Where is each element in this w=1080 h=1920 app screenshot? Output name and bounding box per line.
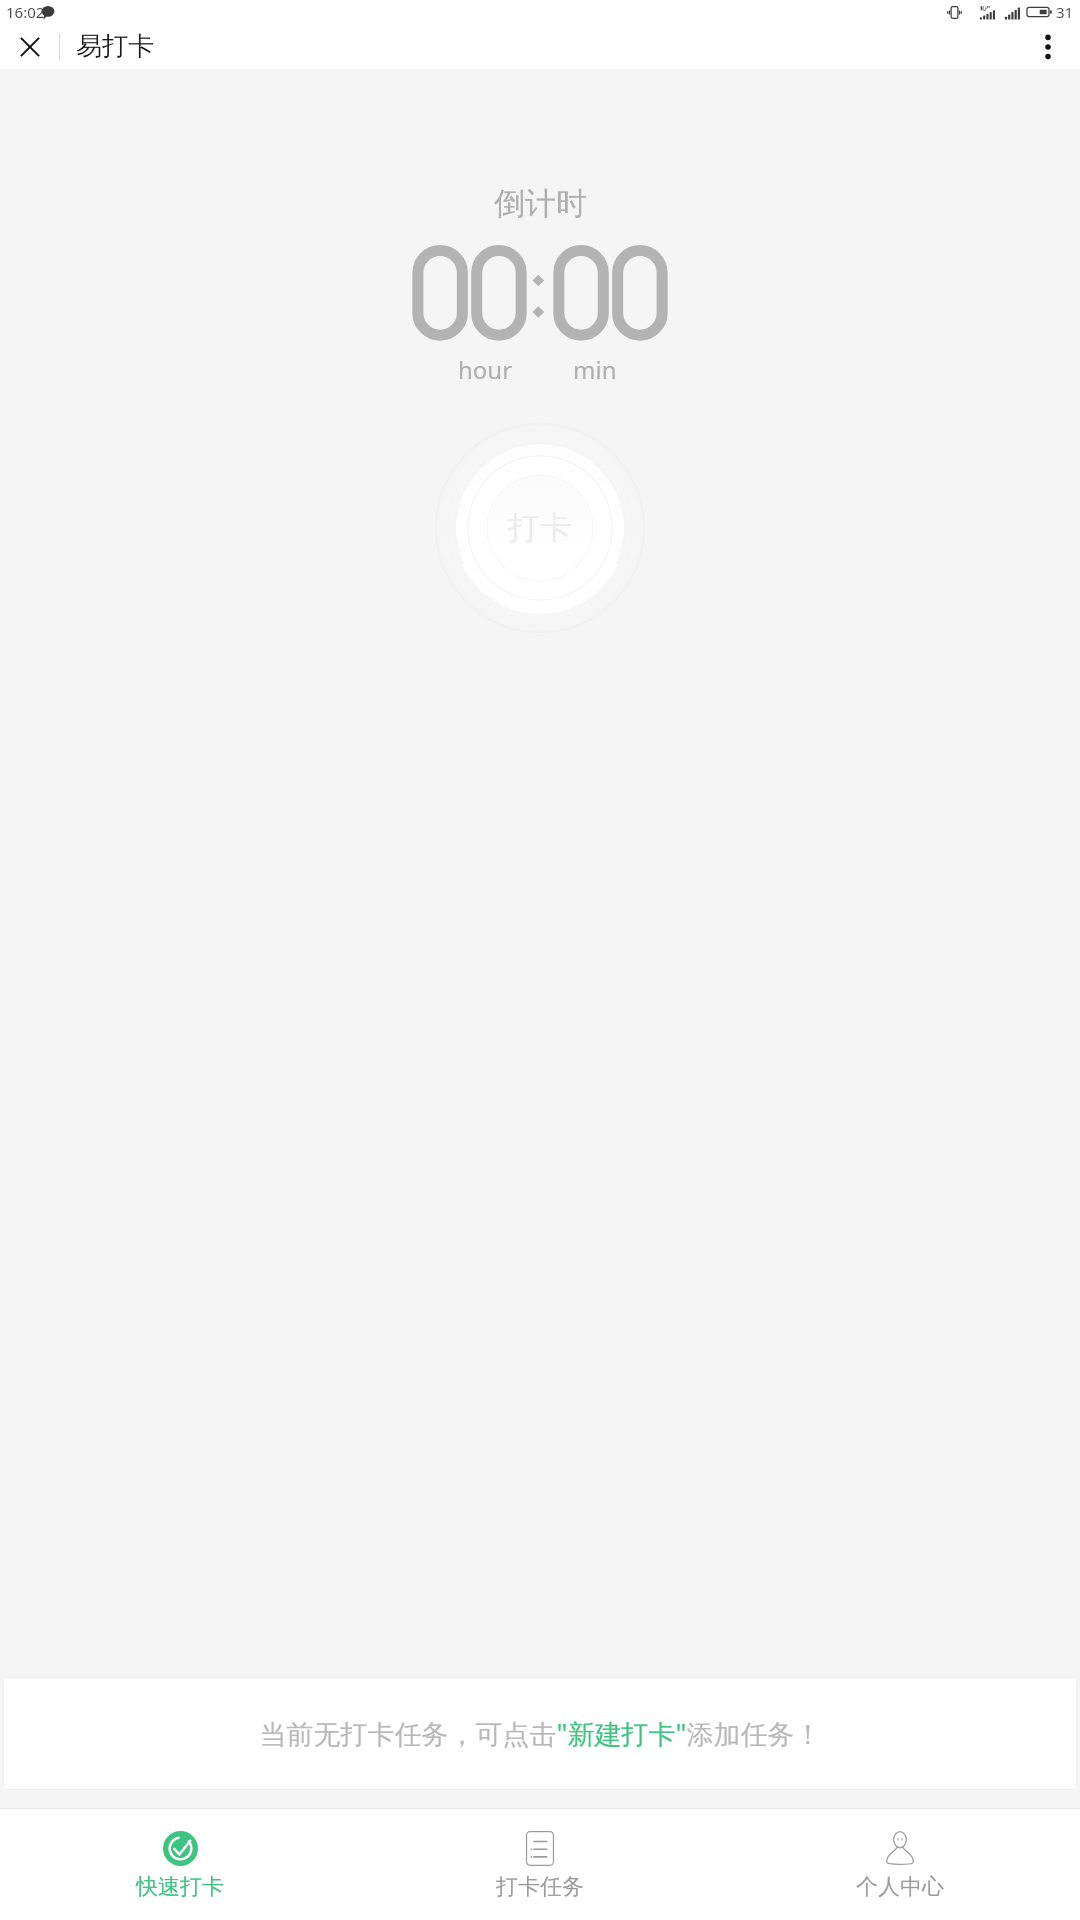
staticText: hour (458, 353, 513, 386)
staticText: 31 (1056, 2, 1074, 22)
staticText: 易打卡 (76, 30, 154, 63)
staticText: 倒计时 (494, 184, 587, 223)
button[interactable]: 打卡任务 (360, 1809, 720, 1920)
staticText: 打卡任务 (496, 1873, 584, 1901)
staticText: 快速打卡 (136, 1873, 224, 1901)
staticText: min (573, 353, 617, 386)
button[interactable]: 个人中心 (720, 1809, 1080, 1920)
staticText: 个人中心 (856, 1873, 944, 1901)
button[interactable]: 当前无打卡任务，可点击"新建打卡"添加任务！ (3, 1677, 1077, 1790)
staticText: 16:02 (6, 2, 45, 22)
button[interactable]: 快速打卡 (0, 1809, 360, 1920)
staticText: 当前无打卡任务，可点击"新建打卡"添加任务！ (259, 1715, 822, 1752)
staticText: 打卡 (508, 508, 572, 548)
button[interactable]: More options (1024, 24, 1072, 69)
button[interactable]: Close (6, 24, 54, 69)
button[interactable]: 打卡 (434, 422, 646, 634)
